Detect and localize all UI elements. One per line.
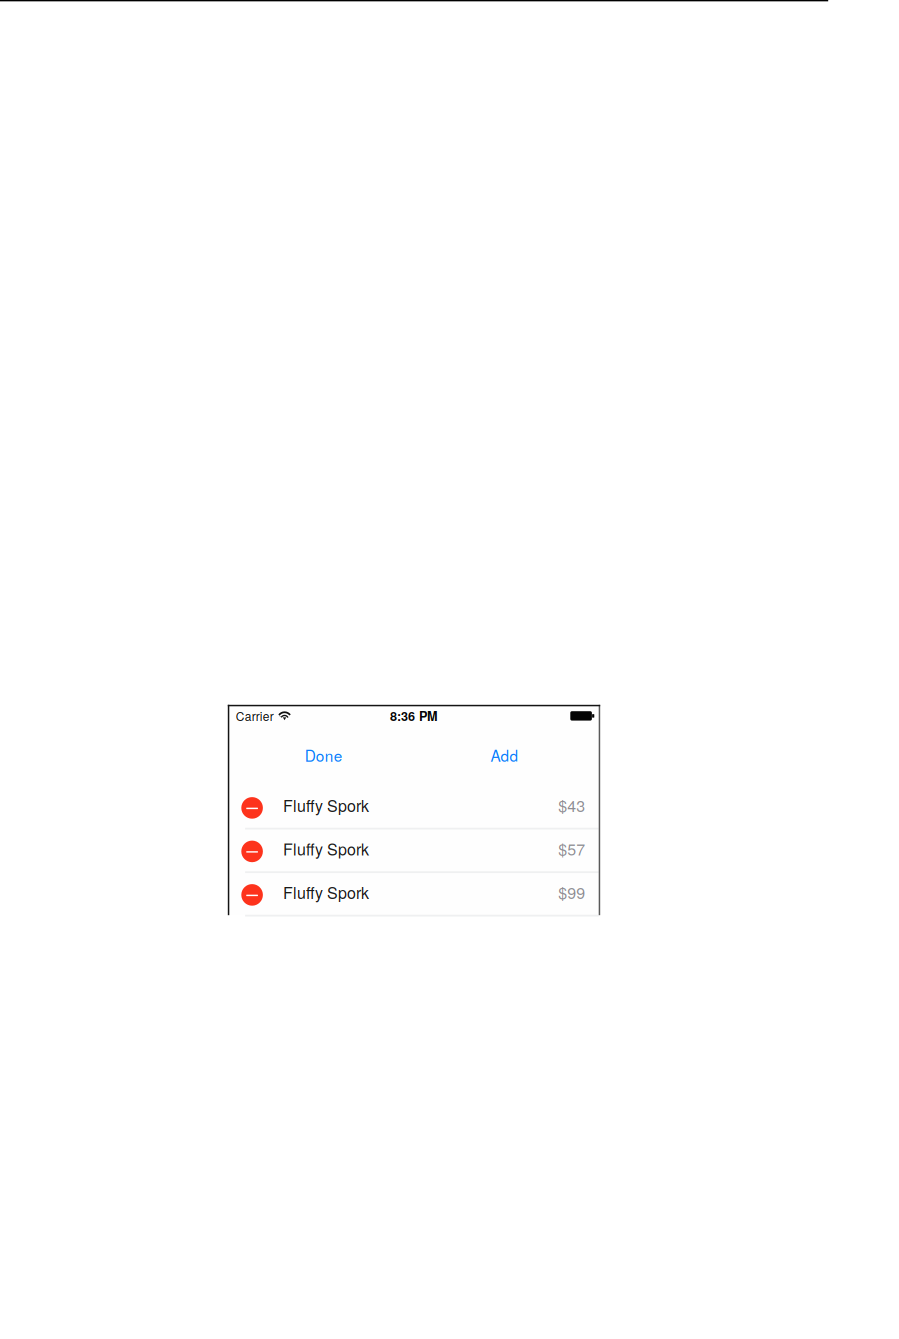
staticText: Fluffy Spork [283, 793, 369, 816]
button[interactable]: Remove Fluffy Spork [241, 797, 263, 819]
button[interactable]: Remove Fluffy Spork [241, 841, 263, 862]
button[interactable]: Remove Fluffy Spork [241, 884, 263, 906]
button[interactable]: Done [233, 722, 414, 786]
button[interactable]: Fluffy Spork [229, 829, 599, 871]
staticText: $99 [558, 880, 585, 903]
staticText: $43 [558, 793, 585, 816]
button[interactable]: Fluffy Spork [229, 786, 599, 828]
staticText: Fluffy Spork [283, 880, 369, 903]
staticText: 8:36 PM [390, 707, 438, 725]
staticText: Done [305, 744, 343, 766]
staticText: Carrier [236, 707, 274, 724]
staticText: Fluffy Spork [283, 837, 369, 860]
staticText: $57 [558, 837, 585, 860]
button[interactable]: Fluffy Spork [229, 873, 599, 915]
staticText: Add [491, 744, 519, 766]
button[interactable]: Add [414, 722, 595, 786]
